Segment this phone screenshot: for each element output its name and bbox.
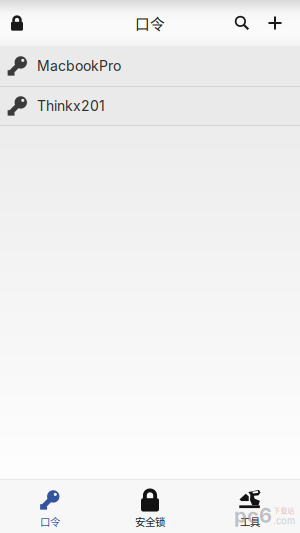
staticText: 口令 [135, 12, 165, 34]
button[interactable]: 口令 [0, 480, 100, 533]
button[interactable]: Add password [260, 8, 290, 38]
staticText: 工具 [240, 514, 260, 529]
button[interactable]: Thinkx201 [0, 87, 300, 126]
staticText: 下载站 [273, 505, 294, 515]
button[interactable]: Search [227, 8, 257, 38]
button[interactable]: 安全锁 [100, 480, 200, 533]
staticText: pc6 [234, 503, 272, 528]
staticText: MacbookPro [37, 57, 121, 74]
staticText: 安全锁 [135, 514, 165, 529]
staticText: .com [273, 515, 295, 526]
button[interactable]: Lock vault [2, 8, 32, 38]
button[interactable]: MacbookPro [0, 46, 300, 87]
staticText: 口令 [40, 514, 60, 529]
button[interactable]: 工具 [200, 480, 300, 533]
staticText: Thinkx201 [37, 97, 105, 114]
